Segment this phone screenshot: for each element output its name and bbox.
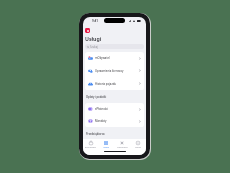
staticText: ePłatności <box>95 107 109 111</box>
button[interactable]: Baza wiedzy <box>83 139 98 150</box>
button[interactable]: Historia pojazdu <box>85 77 144 90</box>
staticText: Historia pojazdu <box>95 82 117 86</box>
button[interactable]: Usługi <box>98 139 114 150</box>
staticText: Usługi <box>103 146 109 149</box>
other: Usługi <box>104 141 108 145</box>
button[interactable]: mObywatel <box>85 52 144 64</box>
staticText: Baza wiedzy <box>85 146 96 149</box>
staticText: Dokumenty <box>117 146 128 149</box>
button[interactable]: ePłatności <box>85 103 144 115</box>
staticText: Usługi <box>85 35 102 42</box>
button[interactable]: Więcej <box>130 139 146 150</box>
button[interactable]: Szukaj <box>85 44 144 49</box>
staticText: Szukaj <box>90 45 98 49</box>
button[interactable]: Uprawnienia kierowcy <box>85 64 144 77</box>
staticText: Więcej <box>135 146 141 149</box>
button[interactable]: Mandaty <box>85 115 144 127</box>
staticText: 9:41 <box>92 19 98 23</box>
other: Baza wiedzy <box>89 141 93 145</box>
other: mObywatel <box>85 28 90 33</box>
staticText: Przedsiębiorca <box>86 132 105 136</box>
staticText: mObywatel <box>95 56 110 60</box>
other: Więcej <box>136 141 140 145</box>
other: Dokumenty <box>120 141 124 145</box>
staticText: Opłaty i podatki <box>86 95 107 99</box>
staticText: Mandaty <box>95 119 107 123</box>
staticText: Uprawnienia kierowcy <box>95 69 124 73</box>
button[interactable]: Dokumenty <box>114 139 130 150</box>
